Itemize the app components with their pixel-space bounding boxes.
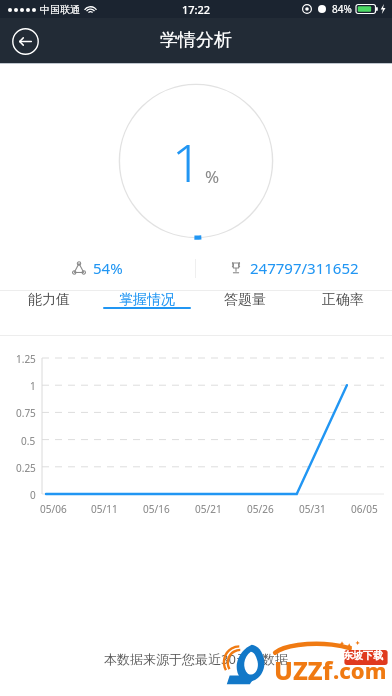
staticText: 05/16	[143, 502, 170, 516]
staticText: 1	[172, 126, 202, 197]
staticText: 84%	[332, 2, 352, 16]
staticText: 05/21	[195, 502, 222, 516]
staticText: 0.75	[16, 406, 36, 418]
staticText: 1	[30, 379, 36, 391]
staticText: 掌握情况	[119, 291, 175, 309]
staticText: UZZf	[274, 653, 333, 687]
staticText: 中国联通	[40, 3, 80, 16]
staticText: 0.5	[21, 434, 36, 446]
staticText: 247797/311652	[250, 258, 359, 278]
button[interactable]: 247797/311652	[196, 258, 392, 278]
button[interactable]: 能力值	[0, 291, 98, 309]
button[interactable]: Back	[10, 26, 40, 56]
staticText: 05/11	[91, 502, 118, 516]
staticText: .com	[333, 655, 387, 685]
staticText: 05/26	[247, 502, 274, 516]
button[interactable]: 掌握情况	[98, 291, 196, 309]
button[interactable]: 正确率	[294, 291, 392, 309]
staticText: %	[205, 165, 220, 188]
staticText: 17:22	[182, 2, 211, 17]
button[interactable]: 答题量	[196, 291, 294, 309]
staticText: 正确率	[322, 291, 364, 309]
staticText: 0	[30, 488, 36, 500]
staticText: 答题量	[224, 291, 266, 309]
staticText: 本数据来源于您最近30天的数据	[104, 650, 288, 668]
staticText: 05/31	[299, 502, 326, 516]
staticText: 0.25	[16, 461, 36, 473]
staticText: 能力值	[28, 291, 70, 309]
staticText: 54%	[93, 258, 123, 278]
staticText: 06/05	[351, 502, 378, 516]
staticText: 学情分析	[160, 29, 232, 52]
button[interactable]: 54%	[0, 258, 195, 278]
staticText: 东坡下载	[343, 649, 383, 662]
staticText: 05/06	[40, 502, 67, 516]
staticText: 1.25	[16, 352, 36, 364]
